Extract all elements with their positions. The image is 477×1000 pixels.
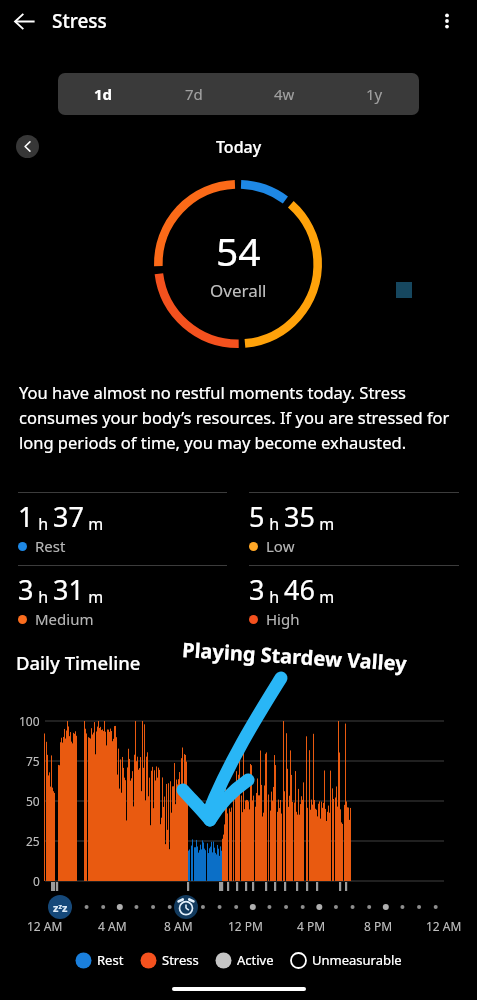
staticText: Today (216, 136, 262, 158)
staticText: Daily Timeline (16, 650, 141, 675)
staticText: m (84, 586, 104, 608)
button[interactable]: Back (4, 1, 44, 41)
staticText: 25 (26, 833, 40, 849)
staticText: Overall (210, 279, 267, 302)
button[interactable]: Unmeasurable (290, 951, 402, 969)
button[interactable]: 5 (249, 492, 459, 556)
staticText: Stress (162, 951, 199, 969)
button[interactable]: Alarm (174, 895, 198, 919)
staticText: Rest (35, 536, 66, 556)
staticText: h (265, 586, 284, 608)
staticText: 54 (216, 224, 261, 277)
staticText: h (34, 586, 53, 608)
staticText: 7d (185, 84, 203, 104)
staticText: 12 PM (228, 918, 263, 934)
staticText: 37 (53, 498, 84, 535)
staticText: 1 (18, 498, 34, 535)
staticText: 46 (284, 571, 315, 608)
staticText: 0 (33, 873, 40, 889)
staticText: Active (237, 951, 274, 969)
staticText: m (315, 586, 335, 608)
staticText: 75 (26, 753, 40, 769)
button[interactable]: Active (215, 951, 274, 969)
staticText: Rest (97, 951, 124, 969)
staticText: Unmeasurable (312, 951, 402, 969)
button[interactable]: 4w (239, 73, 329, 115)
staticText: Stress (52, 8, 107, 34)
button[interactable]: 7d (149, 73, 239, 115)
staticText: 5 (249, 498, 265, 535)
button[interactable]: 3 (18, 565, 227, 629)
staticText: Low (266, 536, 295, 556)
staticText: 1y (366, 84, 383, 104)
staticText: 31 (53, 571, 84, 608)
staticText: 4 AM (98, 918, 127, 934)
staticText: High (266, 609, 300, 629)
button[interactable]: 1d (58, 73, 149, 115)
staticText: 8 PM (364, 918, 393, 934)
button[interactable]: Previous day (16, 135, 39, 158)
staticText: 12 AM (426, 918, 462, 934)
staticText: h (34, 513, 53, 535)
button[interactable]: Stress (140, 951, 199, 969)
staticText: 35 (284, 498, 315, 535)
button[interactable]: 1 (18, 492, 227, 556)
staticText: Playing Stardew Valley (181, 636, 408, 677)
staticText: zᶻz (53, 900, 68, 915)
button[interactable]: 1y (329, 73, 419, 115)
staticText: 3 (249, 571, 265, 608)
staticText: h (265, 513, 284, 535)
staticText: 50 (26, 793, 40, 809)
staticText: 12 AM (27, 918, 63, 934)
staticText: Medium (35, 609, 94, 629)
staticText: m (84, 513, 104, 535)
button[interactable]: Rest (75, 951, 124, 969)
staticText: 4 PM (297, 918, 326, 934)
staticText: 4w (274, 84, 295, 104)
staticText: 1d (94, 84, 113, 104)
staticText: m (315, 513, 335, 535)
staticText: 8 AM (164, 918, 193, 934)
button[interactable]: Sleep (48, 895, 72, 919)
button[interactable]: 3 (249, 565, 459, 629)
staticText: 100 (19, 713, 40, 729)
staticText: 3 (18, 571, 34, 608)
button[interactable]: More options (427, 1, 467, 41)
staticText: You have almost no restful moments today… (19, 381, 451, 453)
